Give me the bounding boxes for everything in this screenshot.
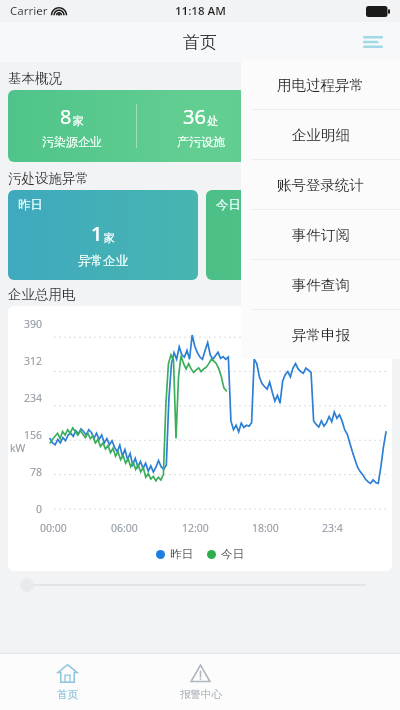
staticText: 处 [207, 114, 218, 128]
staticText: 昨日 [170, 547, 193, 561]
staticText: 今日 [216, 197, 241, 213]
staticText: 234 [16, 391, 42, 405]
staticText: 污染源企业 [42, 134, 102, 149]
staticText: 异常企业 [276, 253, 326, 269]
staticText: 家 [302, 231, 313, 245]
staticText: 35 [311, 103, 334, 130]
staticText: 事件订阅 [292, 226, 350, 244]
button[interactable]: 昨日 [8, 190, 198, 280]
staticText: 0 [16, 502, 42, 516]
button[interactable]: 账号登录统计 [241, 160, 400, 209]
button[interactable]: Menu [358, 27, 388, 57]
staticText: 11:18 AM [175, 3, 226, 19]
staticText: 企业明细 [292, 126, 350, 144]
staticText: 78 [16, 465, 42, 479]
staticText: 产污设施 [177, 134, 225, 149]
staticText: 家 [104, 231, 115, 245]
staticText: 异常申报 [292, 326, 350, 344]
staticText: 异常企业 [78, 253, 128, 269]
staticText: 156 [16, 428, 42, 442]
button[interactable]: 企业明细 [241, 110, 400, 159]
staticText: kW [10, 441, 26, 455]
staticText: 用电过程异常 [277, 76, 364, 94]
button[interactable]: 异常申报 [241, 310, 400, 359]
staticText: 昨日 [18, 197, 43, 213]
staticText: 污处设施 [305, 134, 353, 149]
button[interactable]: 用电过程异常 [241, 60, 400, 109]
button[interactable]: 事件查询 [241, 260, 400, 309]
button[interactable]: 报警中心 [134, 654, 267, 710]
button[interactable]: 事件订阅 [241, 210, 400, 259]
staticText: 36 [183, 103, 206, 130]
staticText: 312 [16, 354, 42, 368]
staticText: 首页 [57, 688, 78, 701]
staticText: 06:00 [111, 521, 138, 535]
button[interactable]: 8 [8, 90, 392, 162]
staticText: 390 [16, 317, 42, 331]
staticText: 23:4 [322, 521, 343, 535]
staticText: 8 [60, 103, 72, 130]
staticText: 企业总用电 [8, 286, 76, 303]
staticText: 1 [91, 220, 103, 247]
staticText: 首页 [183, 32, 217, 53]
staticText: 18:00 [252, 521, 279, 535]
staticText: 报警中心 [180, 688, 222, 701]
staticText: Carrier [10, 3, 48, 19]
staticText: 0 [289, 220, 301, 247]
staticText: 今日 [221, 547, 244, 561]
button[interactable]: 首页 [0, 654, 134, 710]
staticText: 家 [73, 114, 84, 128]
button[interactable]: 今日 [206, 190, 396, 280]
staticText: 污处设施异常 [8, 170, 89, 187]
staticText: 12:00 [182, 521, 209, 535]
staticText: 00:00 [40, 521, 67, 535]
staticText: 基本概况 [8, 70, 62, 87]
staticText: 账号登录统计 [277, 176, 364, 194]
staticText: 事件查询 [292, 276, 350, 294]
